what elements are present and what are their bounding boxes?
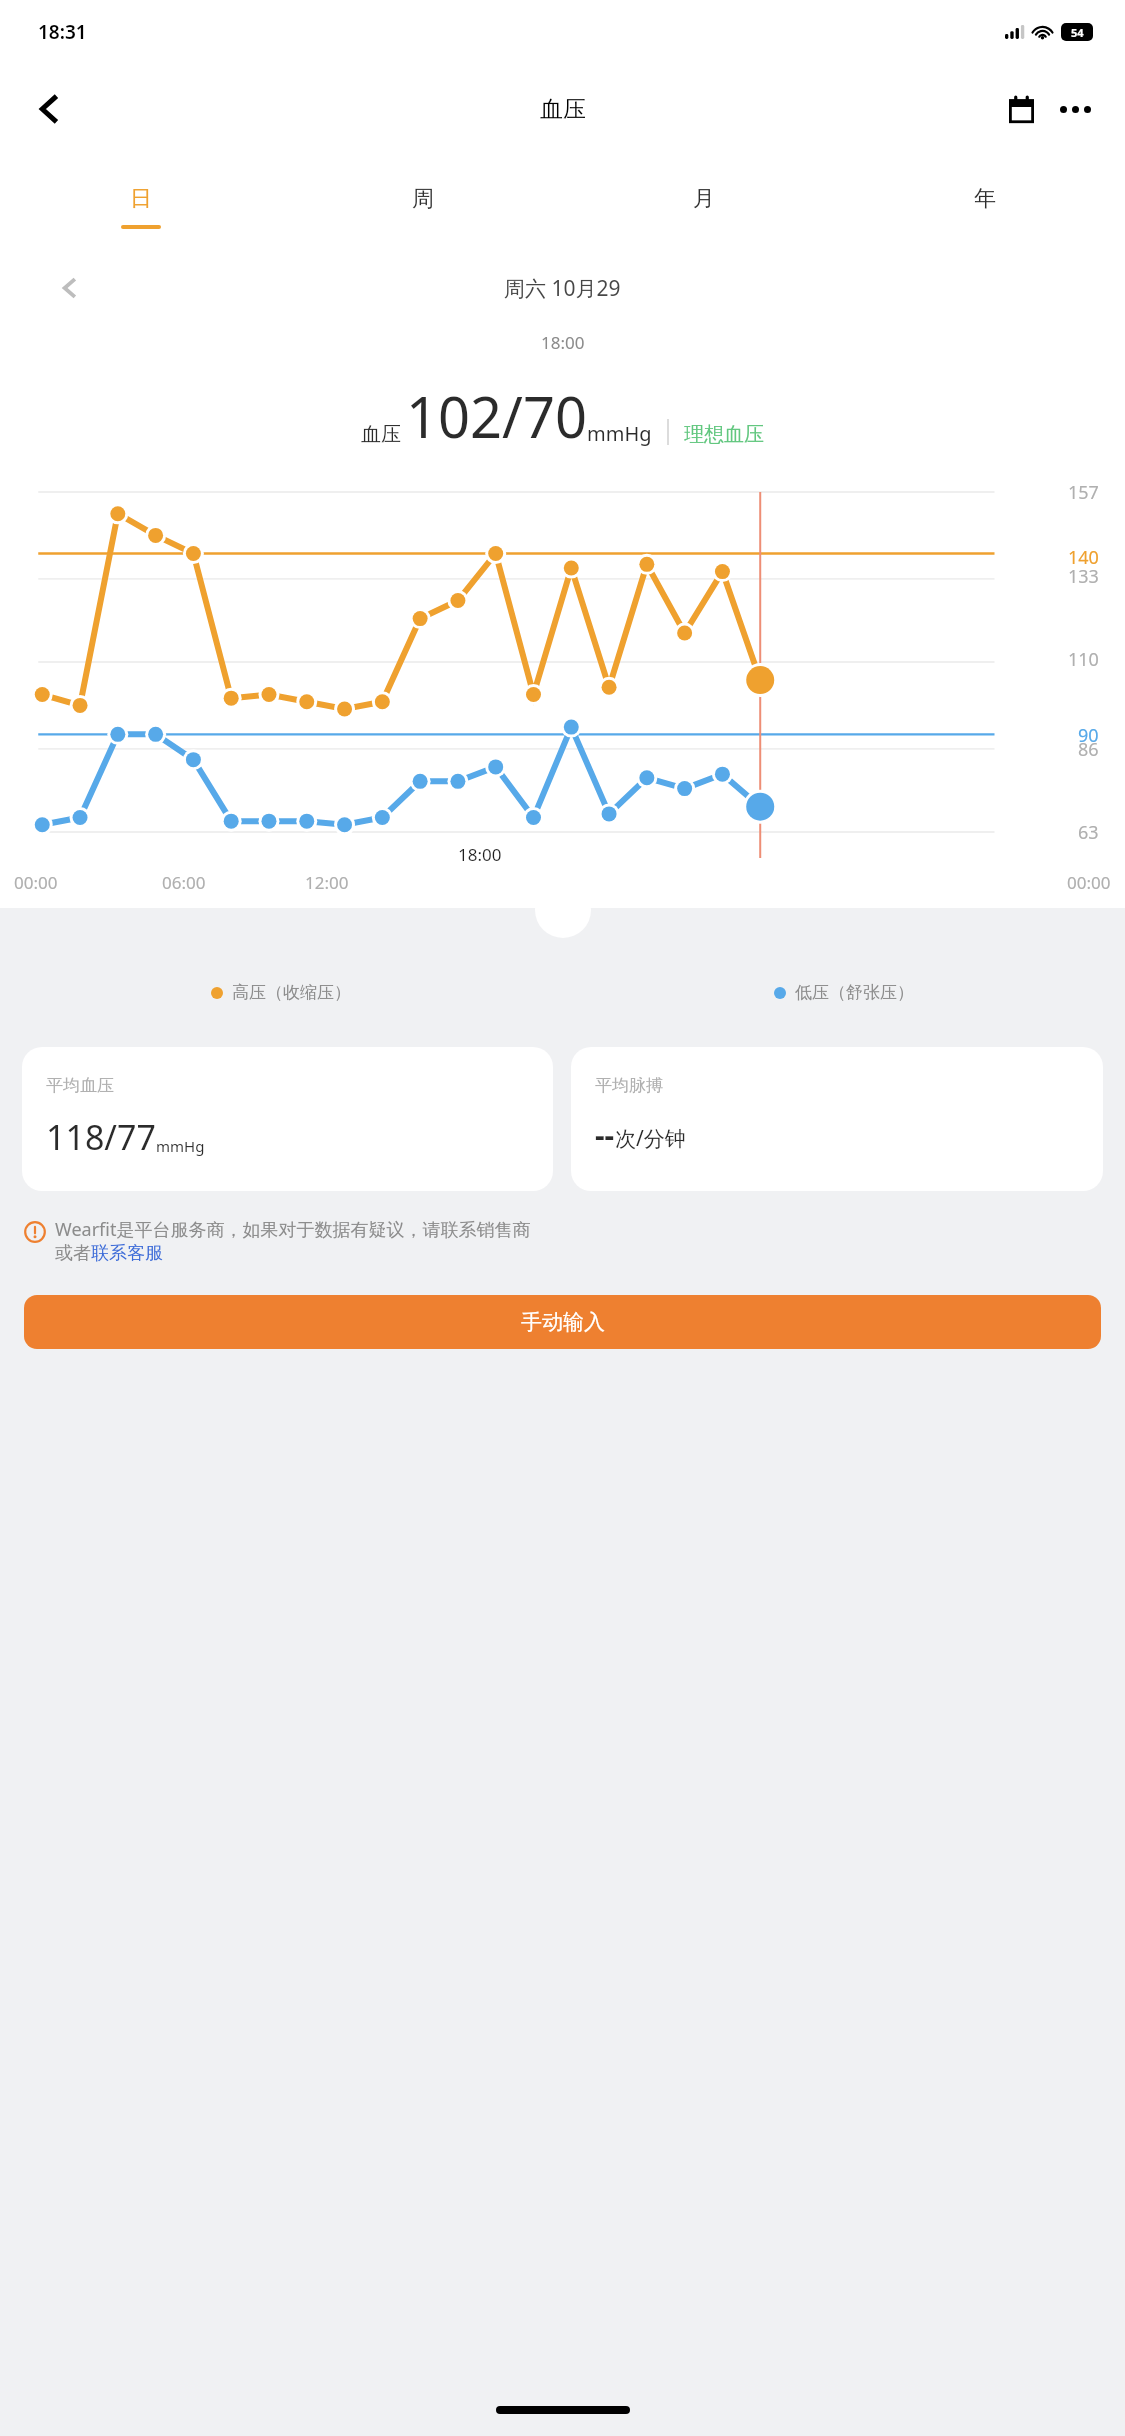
staticText: 63 [1078,820,1099,845]
staticText: 次/分钟 [615,1124,686,1153]
button[interactable]: 平均血压 [22,1047,553,1191]
staticText: 90 [1078,723,1099,748]
staticText: 理想血压 [684,422,764,447]
staticText: 54 [1071,25,1084,40]
staticText: 平均脉搏 [595,1075,663,1096]
staticText: 手动输入 [521,1309,605,1335]
staticText: 06:00 [162,871,206,894]
button[interactable]: 日 [0,154,282,260]
button[interactable]: 手动输入 [24,1295,1101,1349]
staticText: 血压 [361,422,401,447]
staticText: 日 [130,185,152,213]
staticText: 周 [412,185,434,213]
button[interactable]: Back [20,80,78,138]
button[interactable]: 联系客服 [91,1242,163,1265]
staticText: 118/77 [46,1114,156,1160]
staticText: 平均血压 [46,1075,114,1096]
staticText: 133 [1068,564,1099,589]
button[interactable]: 月 [563,154,844,260]
staticText: mmHg [156,1136,205,1156]
staticText: 102/70 [406,378,587,454]
button[interactable]: Previous day [44,263,94,313]
staticText: 月 [693,185,715,213]
button[interactable]: 周 [282,154,563,260]
button[interactable]: 平均脉搏 [571,1047,1103,1191]
staticText: 00:00 [1067,871,1111,894]
staticText: 00:00 [14,871,58,894]
staticText: 157 [1068,480,1099,505]
staticText: 高压（收缩压） [232,982,351,1003]
staticText: 140 [1068,545,1099,570]
staticText: Wearfit是平台服务商，如果对于数据有疑议，请联系销售商 [55,1217,531,1242]
button[interactable]: 年 [844,154,1125,260]
staticText: 18:00 [541,331,585,354]
staticText: 血压 [540,95,586,124]
staticText: 年 [974,185,996,213]
staticText: 18:00 [458,843,502,866]
staticText: 12:00 [305,871,349,894]
button[interactable]: Calendar [995,83,1047,135]
staticText: 86 [1078,737,1099,762]
staticText: 110 [1068,647,1099,672]
button[interactable]: More options [1049,83,1101,135]
staticText: 周六 10月29 [504,274,621,303]
staticText: 低压（舒张压） [795,982,914,1003]
staticText: 或者 [55,1242,91,1265]
staticText: 18:31 [38,19,87,45]
staticText: -- [595,1114,615,1155]
staticText: mmHg [587,420,652,447]
